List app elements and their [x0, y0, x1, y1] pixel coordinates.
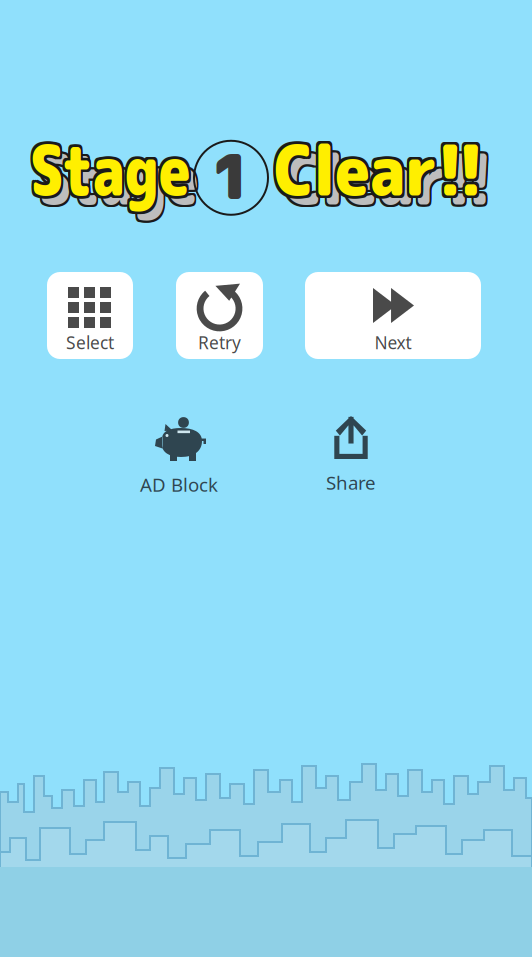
staticText: Clear!!: [286, 128, 528, 225]
staticText: Stage: [27, 118, 230, 215]
staticText: Clear!!: [284, 132, 526, 229]
staticText: Stage: [27, 123, 230, 220]
staticText: Stage: [32, 121, 235, 218]
staticText: Stage: [32, 118, 235, 215]
staticText: Share: [326, 470, 376, 495]
button[interactable]: Select: [47, 272, 133, 359]
staticText: Stage: [30, 123, 233, 220]
staticText: Stage: [30, 118, 233, 215]
staticText: Clear!!: [274, 121, 516, 218]
staticText: Clear!!: [276, 118, 518, 215]
staticText: Stage: [42, 128, 245, 225]
staticText: Clear!!: [271, 121, 513, 218]
staticText: Retry: [198, 331, 241, 354]
staticText: Stage: [40, 130, 243, 227]
staticText: Stage: [40, 132, 243, 229]
staticText: Clear!!: [274, 123, 516, 220]
staticText: Stage: [27, 121, 230, 218]
staticText: Stage: [30, 121, 233, 218]
staticText: Stage: [42, 130, 245, 227]
staticText: Stage: [32, 123, 235, 220]
button[interactable]: Retry: [176, 272, 263, 359]
staticText: Clear!!: [286, 132, 528, 229]
staticText: Clear!!: [286, 130, 528, 227]
staticText: Stage: [38, 128, 241, 225]
staticText: Clear!!: [276, 123, 518, 220]
staticText: Clear!!: [274, 118, 516, 215]
staticText: Next: [374, 331, 411, 354]
staticText: Clear!!: [282, 132, 524, 229]
button[interactable]: AD Block: [129, 404, 229, 494]
staticText: Clear!!: [276, 121, 518, 218]
staticText: 1: [211, 133, 251, 219]
staticText: Select: [66, 331, 114, 354]
staticText: Clear!!: [282, 128, 524, 225]
staticText: Stage: [40, 128, 243, 225]
staticText: Stage: [38, 130, 241, 227]
staticText: Clear!!: [284, 130, 526, 227]
staticText: Stage: [38, 132, 241, 229]
staticText: Clear!!: [284, 128, 526, 225]
staticText: Clear!!: [271, 123, 513, 220]
staticText: Clear!!: [282, 130, 524, 227]
staticText: Clear!!: [271, 118, 513, 215]
button[interactable]: Next: [305, 272, 481, 359]
staticText: Stage: [42, 132, 245, 229]
button[interactable]: Share: [308, 404, 394, 494]
staticText: AD Block: [140, 472, 218, 497]
